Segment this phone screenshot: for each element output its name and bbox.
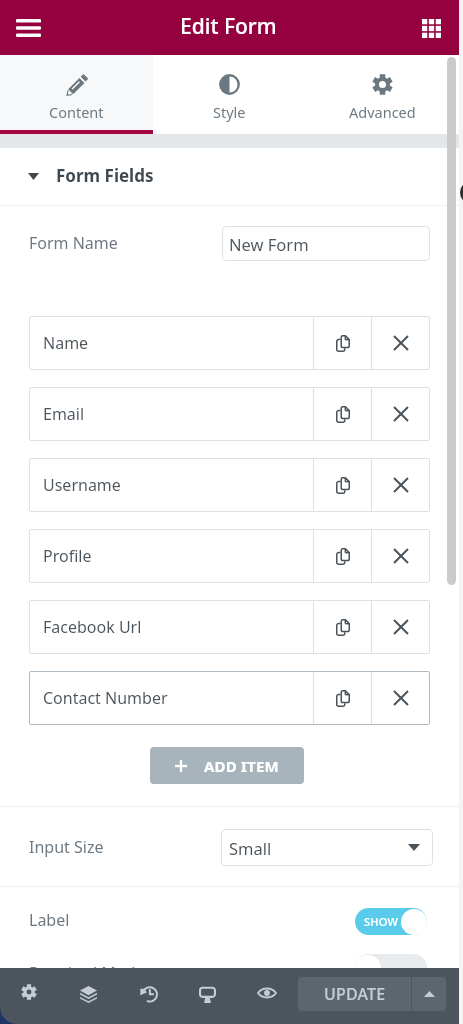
button[interactable]: New Form (222, 226, 430, 261)
staticText: New Form (229, 233, 309, 255)
button[interactable]: Remove (372, 458, 430, 512)
button[interactable]: Preview changes (241, 968, 293, 1024)
button[interactable]: Remove (372, 529, 430, 583)
staticText: Username (43, 474, 121, 496)
staticText: Name (43, 332, 89, 354)
button[interactable]: Duplicate (314, 671, 371, 725)
staticText: Profile (43, 545, 92, 567)
button[interactable]: Apps (409, 6, 453, 50)
staticText: Facebook Url (43, 616, 142, 638)
staticText: ADD ITEM (204, 756, 279, 776)
staticText: Label (29, 909, 70, 931)
button[interactable]: Content (0, 55, 153, 134)
button[interactable]: Facebook Url (29, 600, 430, 654)
button[interactable]: Menu (6, 6, 50, 50)
button[interactable]: UPDATE (298, 977, 411, 1011)
staticText: Contact Number (43, 687, 168, 709)
staticText: Form Fields (56, 164, 154, 187)
staticText: Small (229, 837, 272, 859)
button[interactable]: History (122, 968, 174, 1024)
staticText: Input Size (29, 836, 104, 858)
button[interactable]: Duplicate (314, 316, 371, 370)
button[interactable]: Remove (372, 671, 430, 725)
button[interactable]: Duplicate (314, 387, 371, 441)
staticText: Required Mark (29, 962, 140, 984)
button[interactable]: Duplicate (314, 600, 371, 654)
button[interactable]: Show (355, 908, 427, 935)
staticText: Advanced (349, 102, 416, 122)
button[interactable]: ADD ITEM (150, 747, 304, 784)
button[interactable]: Duplicate (314, 529, 371, 583)
button[interactable]: Remove (372, 600, 430, 654)
staticText: SHOW (364, 914, 398, 929)
button[interactable]: Name (29, 316, 430, 370)
button[interactable]: Responsive mode (181, 968, 233, 1024)
button[interactable]: Settings (3, 968, 55, 1024)
staticText: Edit Form (180, 12, 277, 41)
staticText: UPDATE (324, 983, 386, 1005)
button[interactable]: Advanced (306, 55, 459, 134)
button[interactable]: Navigator (62, 968, 114, 1024)
button[interactable]: Contact Number (29, 671, 430, 725)
staticText: Email (43, 403, 85, 425)
staticText: Style (213, 102, 246, 122)
staticText: Content (49, 102, 104, 122)
button[interactable]: More options (412, 977, 446, 1011)
button[interactable]: Small (221, 829, 433, 866)
button[interactable]: Email (29, 387, 430, 441)
button[interactable]: Profile (29, 529, 430, 583)
button[interactable]: Username (29, 458, 430, 512)
button[interactable]: Remove (372, 387, 430, 441)
button[interactable]: Hide (355, 954, 427, 981)
button[interactable]: Style (153, 55, 306, 134)
button[interactable]: Duplicate (314, 458, 371, 512)
button[interactable]: Remove (372, 316, 430, 370)
staticText: Form Name (29, 232, 118, 254)
